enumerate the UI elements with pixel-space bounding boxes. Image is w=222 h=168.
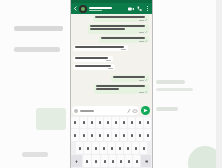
button[interactable]: Key bbox=[120, 129, 127, 141]
button[interactable]: Key bbox=[80, 117, 87, 128]
button[interactable]: Key bbox=[101, 155, 108, 167]
button[interactable] bbox=[73, 45, 128, 51]
button[interactable]: Key bbox=[116, 142, 123, 154]
button[interactable]: Key bbox=[120, 117, 127, 128]
button[interactable]: Key bbox=[117, 155, 124, 167]
button[interactable] bbox=[89, 7, 126, 11]
button[interactable]: Key bbox=[132, 142, 139, 154]
button[interactable]: Call bbox=[135, 4, 144, 13]
button[interactable]: Key bbox=[76, 142, 83, 154]
button[interactable]: Profile photo bbox=[79, 5, 87, 13]
button[interactable]: Key bbox=[92, 155, 100, 167]
button[interactable]: Key bbox=[109, 155, 116, 167]
button[interactable] bbox=[73, 56, 113, 62]
button[interactable] bbox=[88, 24, 149, 34]
button[interactable]: Key bbox=[96, 129, 103, 141]
button[interactable]: Key bbox=[83, 155, 91, 167]
button[interactable]: Key bbox=[144, 129, 151, 141]
button[interactable]: Key bbox=[88, 129, 95, 141]
button[interactable]: Key bbox=[125, 155, 132, 167]
button[interactable]: Key bbox=[133, 155, 140, 167]
button[interactable] bbox=[99, 36, 149, 43]
button[interactable]: Key bbox=[104, 129, 111, 141]
button[interactable]: Key bbox=[100, 142, 107, 154]
button[interactable]: Key bbox=[128, 129, 135, 141]
button[interactable]: Key bbox=[124, 142, 131, 154]
button[interactable]: Key bbox=[88, 117, 95, 128]
button[interactable]: Key bbox=[92, 142, 99, 154]
button[interactable]: More options bbox=[144, 4, 150, 13]
button[interactable]: Key bbox=[108, 142, 115, 154]
button[interactable]: Key bbox=[96, 117, 103, 128]
button[interactable]: Backspace bbox=[141, 155, 151, 167]
button[interactable] bbox=[73, 64, 115, 70]
button[interactable]: Key bbox=[112, 117, 119, 128]
button[interactable]: Key bbox=[128, 117, 135, 128]
button[interactable] bbox=[111, 75, 149, 82]
button[interactable]: Key bbox=[140, 142, 147, 154]
button[interactable] bbox=[72, 106, 139, 115]
button[interactable]: Key bbox=[144, 117, 151, 128]
button[interactable]: Key bbox=[136, 117, 143, 128]
button[interactable]: Key bbox=[84, 142, 91, 154]
button[interactable]: Key bbox=[136, 129, 143, 141]
button[interactable]: Video call bbox=[126, 4, 135, 13]
button[interactable] bbox=[93, 15, 149, 22]
button[interactable]: Key bbox=[71, 117, 79, 128]
button[interactable]: Key bbox=[112, 129, 119, 141]
button[interactable]: Shift bbox=[71, 155, 82, 167]
button[interactable]: Back bbox=[72, 5, 79, 12]
button[interactable]: Send bbox=[141, 106, 150, 115]
button[interactable]: Key bbox=[80, 129, 87, 141]
button[interactable]: Key bbox=[71, 129, 79, 141]
button[interactable]: Key bbox=[104, 117, 111, 128]
button[interactable] bbox=[94, 84, 149, 94]
